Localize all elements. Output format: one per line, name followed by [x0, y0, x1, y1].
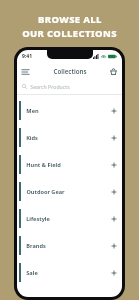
button[interactable]: Brands — [17, 232, 122, 259]
button[interactable]: Lifestyle — [17, 205, 122, 232]
other: Expand Outdoor Gear — [110, 188, 118, 196]
staticText: Search Products — [30, 83, 70, 90]
other: Expand Brands — [110, 242, 118, 250]
other: Expand Men — [110, 107, 118, 115]
staticText: Lifestyle — [26, 215, 50, 223]
button[interactable]: Sale — [17, 259, 122, 286]
staticText: Outdoor Gear — [26, 188, 65, 196]
other: Expand Lifestyle — [110, 215, 118, 223]
staticText: Hunt & Field — [26, 161, 61, 169]
button[interactable]: Menu — [20, 66, 31, 77]
staticText: Collections — [53, 67, 87, 75]
other: Expand Hunt & Field — [110, 161, 118, 169]
staticText: Sale — [26, 269, 38, 277]
other: Expand Sale — [110, 269, 118, 277]
button[interactable]: Men — [17, 97, 122, 124]
button[interactable]: Cart — [108, 66, 119, 77]
other: Expand Kids — [110, 134, 118, 142]
staticText: OUR COLLECTIONS — [22, 27, 117, 40]
button[interactable]: Outdoor Gear — [17, 178, 122, 205]
button[interactable]: Search Products — [17, 79, 122, 94]
button[interactable]: Kids — [17, 124, 122, 151]
staticText: 9:41 — [22, 53, 32, 60]
staticText: Men — [26, 107, 39, 115]
button[interactable]: Hunt & Field — [17, 151, 122, 178]
staticText: Kids — [26, 134, 38, 142]
staticText: Brands — [26, 242, 46, 250]
staticText: BROWSE ALL — [38, 13, 102, 26]
